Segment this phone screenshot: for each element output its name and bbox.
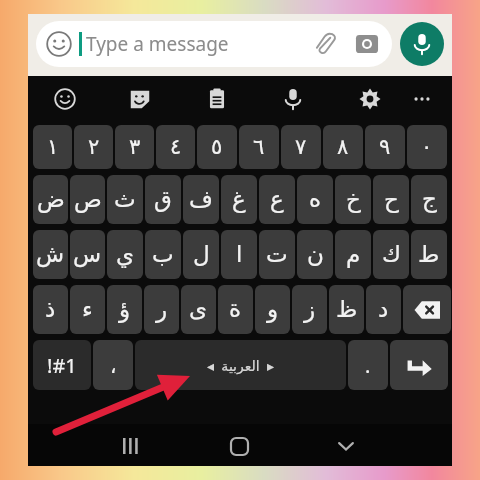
button[interactable]: ت — [259, 230, 295, 279]
button[interactable]: ء — [70, 285, 105, 334]
button[interactable]: ز — [292, 285, 327, 334]
staticText: ، — [110, 354, 117, 377]
staticText: . — [365, 352, 371, 379]
button[interactable]: ١ — [33, 125, 72, 169]
button[interactable]: !#1 — [33, 340, 91, 390]
staticText: ي — [116, 241, 135, 268]
button[interactable]: ك — [373, 230, 409, 279]
button[interactable]: س — [70, 230, 105, 279]
staticText: ١ — [47, 135, 59, 159]
button[interactable]: . — [348, 340, 388, 390]
button[interactable]: ذ — [33, 285, 68, 334]
staticText: س — [73, 241, 102, 268]
button[interactable]: Space, Arabic — [135, 340, 346, 390]
button[interactable]: ٧ — [281, 125, 321, 169]
staticText: ٩ — [379, 135, 391, 159]
button[interactable]: ظ — [329, 285, 364, 334]
staticText: ٨ — [337, 135, 349, 159]
button[interactable]: Clipboard — [201, 83, 233, 115]
staticText: ذ — [45, 296, 56, 323]
button[interactable]: ل — [183, 230, 219, 279]
button[interactable]: ق — [145, 175, 181, 224]
staticText: ◂ العربية ▸ — [207, 356, 274, 375]
button[interactable]: ي — [107, 230, 143, 279]
button[interactable]: ه — [297, 175, 333, 224]
button[interactable]: م — [335, 230, 371, 279]
button[interactable]: ٨ — [323, 125, 363, 169]
staticText: ٠ — [421, 135, 433, 159]
button[interactable]: ف — [183, 175, 219, 224]
button[interactable]: Recents — [118, 433, 144, 459]
button[interactable]: و — [255, 285, 290, 334]
button[interactable]: ؤ — [107, 285, 142, 334]
button[interactable]: ٥ — [197, 125, 237, 169]
staticText: Type a message — [86, 31, 229, 57]
button[interactable]: ٤ — [156, 125, 195, 169]
button[interactable]: ٢ — [74, 125, 113, 169]
button[interactable]: ٩ — [365, 125, 405, 169]
button[interactable]: ٠ — [407, 125, 447, 169]
button[interactable]: ج — [411, 175, 447, 224]
button[interactable]: خ — [335, 175, 371, 224]
staticText: ٢ — [88, 135, 100, 159]
staticText: ك — [382, 241, 401, 268]
staticText: ق — [154, 186, 172, 213]
staticText: ث — [114, 186, 136, 213]
button[interactable]: Emoji — [36, 21, 392, 67]
button[interactable]: ن — [297, 230, 333, 279]
staticText: ف — [189, 186, 213, 213]
staticText: غ — [232, 186, 246, 213]
staticText: ى — [189, 296, 208, 323]
button[interactable]: ب — [145, 230, 181, 279]
button[interactable]: Attach — [310, 29, 340, 59]
button[interactable]: Backspace — [403, 285, 451, 334]
button[interactable]: Emoji — [49, 83, 81, 115]
staticText: ج — [422, 186, 437, 213]
button[interactable]: Camera — [352, 29, 382, 59]
staticText: ش — [36, 241, 65, 268]
staticText: ع — [270, 186, 284, 213]
staticText: ٣ — [129, 135, 141, 159]
staticText: !#1 — [47, 352, 77, 379]
button[interactable]: ، — [93, 340, 133, 390]
staticText: ٧ — [295, 135, 307, 159]
button[interactable]: ث — [107, 175, 143, 224]
button[interactable]: ة — [218, 285, 253, 334]
button[interactable]: Stickers — [124, 83, 156, 115]
button[interactable]: ى — [181, 285, 216, 334]
button[interactable]: د — [366, 285, 401, 334]
button[interactable]: ص — [70, 175, 105, 224]
staticText: ٥ — [211, 135, 223, 159]
button[interactable]: ر — [144, 285, 179, 334]
button[interactable]: ٦ — [239, 125, 279, 169]
staticText: ل — [193, 241, 210, 268]
button[interactable]: ش — [33, 230, 68, 279]
button[interactable]: Home — [226, 433, 252, 459]
staticText: ض — [37, 186, 65, 213]
button[interactable]: ٣ — [115, 125, 154, 169]
button[interactable]: Settings — [354, 83, 386, 115]
staticText: ز — [304, 296, 316, 323]
button[interactable]: ا — [221, 230, 257, 279]
staticText: ء — [82, 296, 93, 323]
staticText: ه — [309, 186, 322, 213]
button[interactable]: ح — [373, 175, 409, 224]
button[interactable]: ض — [33, 175, 68, 224]
staticText: م — [346, 241, 361, 268]
staticText: ت — [266, 241, 288, 268]
staticText: خ — [346, 186, 361, 213]
button[interactable]: Enter — [390, 340, 448, 390]
button[interactable]: Voice input — [277, 83, 309, 115]
staticText: ة — [229, 296, 242, 323]
staticText: ٤ — [170, 135, 182, 159]
button[interactable]: Emoji — [46, 31, 72, 57]
button[interactable]: غ — [221, 175, 257, 224]
staticText: ؤ — [119, 296, 131, 323]
button[interactable]: ع — [259, 175, 295, 224]
staticText: ظ — [336, 296, 358, 323]
button[interactable]: Hide keyboard — [333, 433, 359, 459]
staticText: ن — [307, 241, 324, 268]
button[interactable]: Voice message — [400, 22, 444, 66]
button[interactable]: More — [406, 83, 438, 115]
button[interactable]: ط — [411, 230, 447, 279]
